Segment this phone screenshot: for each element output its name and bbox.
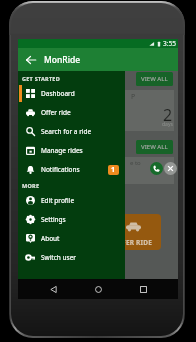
staticText: 2 — [163, 104, 173, 126]
button[interactable]: Call — [150, 162, 163, 175]
staticText: Manage rides — [41, 146, 83, 155]
button[interactable]: Switch user — [18, 248, 125, 267]
staticText: days — [162, 121, 173, 128]
button[interactable]: Back — [43, 279, 63, 299]
staticText: VIEW ALL — [141, 75, 168, 83]
staticText: 3:55 — [163, 39, 176, 48]
button[interactable]: Recents — [133, 279, 153, 299]
button[interactable]: Search for a ride — [18, 122, 125, 141]
button[interactable]: Offer ride — [18, 103, 125, 122]
staticText: Settings — [41, 215, 66, 224]
button[interactable]: About — [18, 229, 125, 248]
staticText: Search for a ride — [41, 127, 92, 136]
staticText: P — [131, 92, 136, 102]
button[interactable]: Dashboard — [18, 84, 125, 103]
staticText: Notifications — [41, 165, 80, 174]
button[interactable]: Cancel — [164, 162, 177, 175]
button[interactable]: Home — [88, 279, 108, 299]
staticText: Dashboard — [41, 89, 75, 98]
staticText: e to — [130, 159, 141, 167]
staticText: Switch user — [41, 253, 77, 262]
staticText: OFFER RIDE — [113, 238, 153, 247]
button[interactable]: OFFER RIDE — [105, 214, 161, 250]
button[interactable]: VIEW ALL — [136, 140, 173, 154]
staticText: About — [41, 234, 60, 243]
button[interactable]: Back — [21, 50, 40, 69]
staticText: Offer ride — [41, 108, 71, 117]
staticText: 1 — [111, 165, 116, 175]
staticText: MonRide — [44, 54, 81, 66]
staticText: VIEW ALL — [141, 143, 168, 151]
staticText: GET STARTED — [22, 75, 60, 82]
button[interactable]: VIEW ALL — [136, 72, 173, 86]
button[interactable]: Manage rides — [18, 141, 125, 160]
staticText: MORE — [22, 182, 40, 189]
button[interactable]: Edit profile — [18, 191, 125, 210]
staticText: Edit profile — [41, 196, 75, 205]
button[interactable]: Settings — [18, 210, 125, 229]
button[interactable]: Notifications — [18, 160, 125, 179]
